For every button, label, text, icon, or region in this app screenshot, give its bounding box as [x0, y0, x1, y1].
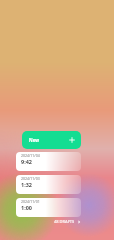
staticText: 2024/11/01 [21, 199, 40, 204]
staticText: 2024/11/03 [21, 176, 40, 181]
staticText: 9:42 [21, 158, 32, 165]
staticText: 1:00 [21, 204, 32, 211]
staticText: 1:32 [21, 181, 32, 188]
button[interactable]: 48 DRAFTS [16, 219, 81, 224]
staticText: New [29, 137, 40, 143]
button[interactable]: 2024/11/03 [16, 175, 81, 194]
button[interactable]: 2024/11/04 [16, 152, 81, 171]
staticText: 48 DRAFTS [54, 219, 75, 224]
button[interactable]: New [22, 131, 81, 149]
staticText: 2024/11/04 [21, 153, 40, 158]
button[interactable]: 2024/11/01 [16, 198, 81, 217]
